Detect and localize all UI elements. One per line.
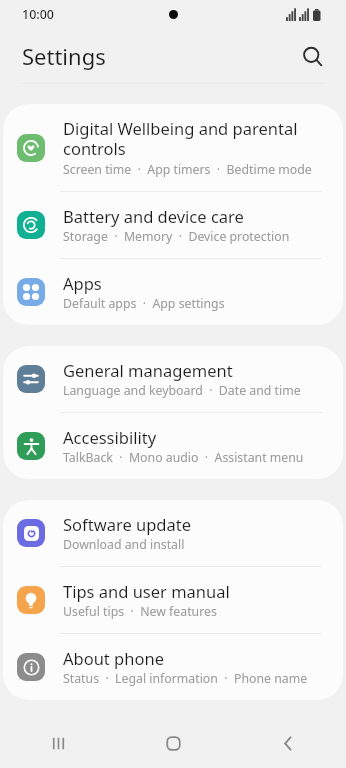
staticText: Battery and device care — [63, 205, 244, 227]
button[interactable]: Tips and user manual — [3, 567, 343, 633]
button[interactable]: Recents — [0, 718, 116, 768]
staticText: Screen time · App timers · Bedtime mode — [63, 161, 312, 178]
button[interactable]: Digital Wellbeing and parental controls — [3, 104, 343, 191]
button[interactable]: Software update — [3, 500, 343, 566]
staticText: Digital Wellbeing and parental controls — [63, 117, 298, 160]
button[interactable]: Accessibility — [3, 413, 343, 479]
staticText: Status · Legal information · Phone name — [63, 670, 308, 687]
staticText: Useful tips · New features — [63, 603, 217, 620]
staticText: TalkBack · Mono audio · Assistant menu — [63, 449, 304, 466]
staticText: About phone — [63, 647, 164, 669]
staticText: Apps — [63, 272, 102, 294]
staticText: Storage · Memory · Device protection — [63, 228, 290, 245]
staticText: General management — [63, 359, 233, 381]
staticText: Language and keyboard · Date and time — [63, 382, 301, 399]
button[interactable]: About phone — [3, 634, 343, 700]
button[interactable]: Search — [292, 36, 332, 76]
staticText: Accessibility — [63, 426, 157, 448]
staticText: Default apps · App settings — [63, 295, 225, 312]
button[interactable]: Apps — [3, 259, 343, 325]
button[interactable]: Back — [231, 718, 346, 768]
staticText: 10:00 — [22, 6, 55, 23]
staticText: Software update — [63, 513, 191, 535]
button[interactable]: Home — [116, 718, 231, 768]
staticText: Settings — [22, 41, 106, 71]
staticText: Download and install — [63, 536, 185, 553]
button[interactable]: Battery and device care — [3, 192, 343, 258]
staticText: Tips and user manual — [63, 580, 230, 602]
button[interactable]: General management — [3, 346, 343, 412]
